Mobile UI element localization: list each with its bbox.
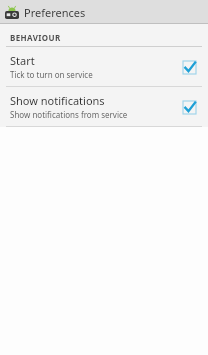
staticText: BEHAVIOUR [10,32,61,43]
staticText: Start [10,53,35,68]
other: App icon [5,6,19,19]
staticText: Preferences [24,5,86,20]
button[interactable]: Toggle setting [180,58,198,76]
staticText: Tick to turn on service [10,69,93,80]
staticText: Show notifications [10,93,105,108]
button[interactable]: Start [0,47,208,86]
button[interactable]: Toggle setting [180,98,198,116]
button[interactable]: Show notifications [0,87,208,126]
staticText: Show notifications from service [10,109,128,120]
